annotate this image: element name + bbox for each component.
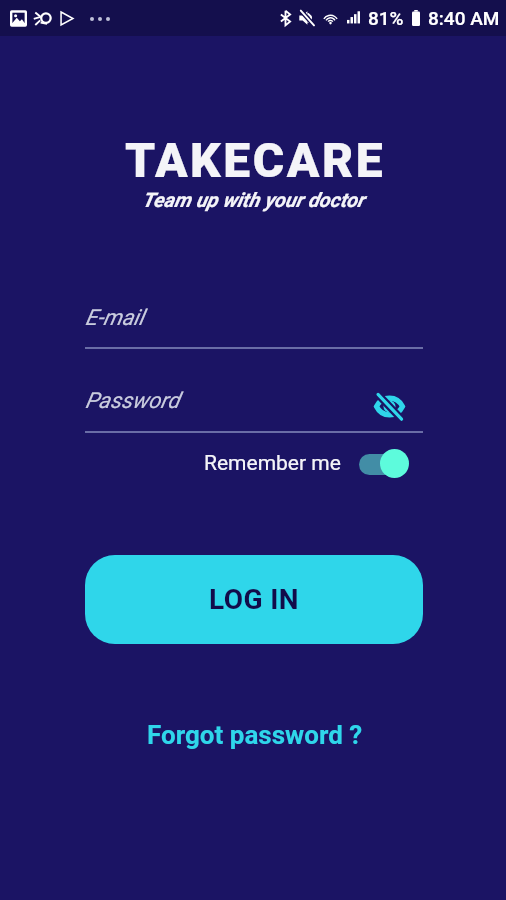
staticText: E-mail: [85, 305, 144, 331]
button[interactable]: Remember me: [204, 443, 409, 483]
staticText: TAKECARE: [2, 132, 506, 188]
staticText: Remember me: [204, 451, 341, 476]
staticText: 8:40 AM: [428, 7, 500, 29]
button[interactable]: Password: [85, 381, 423, 433]
button[interactable]: LOG IN: [85, 555, 423, 644]
staticText: 81%: [368, 7, 404, 29]
staticText: LOG IN: [209, 583, 300, 616]
button[interactable]: E-mail: [85, 298, 423, 349]
staticText: Password: [85, 388, 180, 414]
staticText: Team up with your doctor: [0, 188, 506, 211]
button[interactable]: Show password: [367, 384, 411, 428]
button[interactable]: Forgot password ?: [139, 716, 371, 754]
